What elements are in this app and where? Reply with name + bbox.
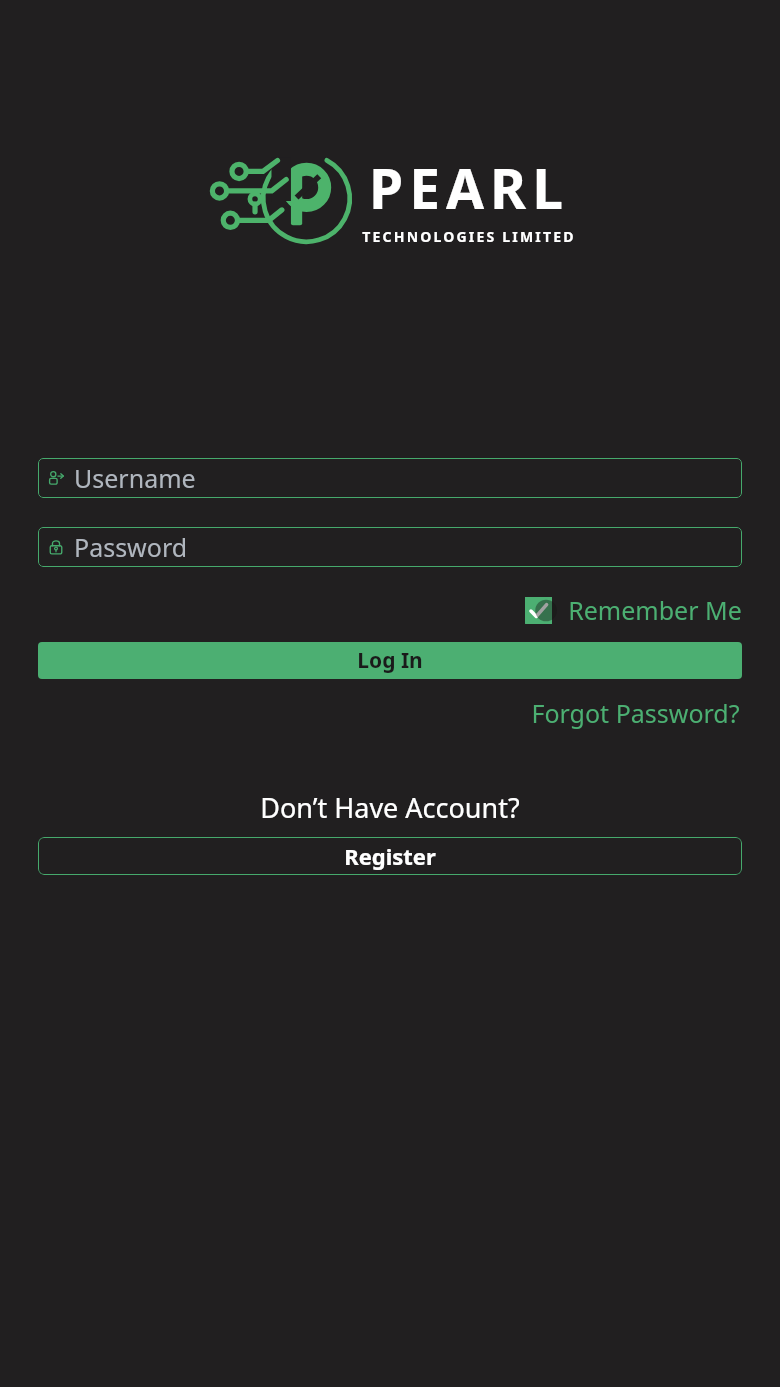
button[interactable]: Password <box>38 527 742 567</box>
staticText: Register <box>344 841 436 871</box>
staticText: Username <box>74 461 196 495</box>
staticText: Password <box>74 530 188 564</box>
button[interactable]: Log In <box>38 642 742 679</box>
staticText: Don’t Have Account? <box>260 789 520 826</box>
staticText: Remember Me <box>568 593 742 627</box>
button[interactable]: Forgot Password? <box>529 694 742 732</box>
button[interactable]: Remember Me <box>525 593 742 627</box>
button[interactable]: Register <box>38 837 742 875</box>
staticText: Forgot Password? <box>531 696 740 730</box>
button[interactable]: Username <box>38 458 742 498</box>
staticText: TECHNOLOGIES LIMITED <box>362 227 576 246</box>
staticText: PEARL <box>369 150 569 225</box>
staticText: Log In <box>357 646 423 675</box>
